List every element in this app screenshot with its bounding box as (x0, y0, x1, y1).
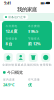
button[interactable]: 能耗报告 (27, 53, 39, 66)
staticText: 使用帮助 (40, 63, 52, 66)
staticText: 今日概览 (7, 70, 23, 75)
staticText: ¥ 86.5 (28, 29, 38, 34)
staticText: ▮▮▮ (41, 1, 44, 4)
staticText: 在线设备 (5, 37, 17, 40)
staticText: 24.5°C (3, 82, 15, 87)
staticText: 家庭成员 (15, 63, 27, 66)
staticText: 优 (28, 82, 32, 87)
staticText: 本月费用 (28, 24, 40, 28)
button[interactable]: 家庭成员 (14, 53, 27, 66)
button[interactable]: 设备运行正常 (3, 14, 28, 20)
staticText: 全屋控制 (2, 63, 14, 66)
staticText: 我的家庭 (17, 6, 37, 13)
staticText: 前 12% (28, 41, 41, 46)
button[interactable]: 全屋控制 (2, 53, 14, 66)
button[interactable]: 使用帮助 (39, 53, 52, 66)
staticText: 室内温度 (3, 78, 15, 81)
staticText: 12.4 度 (5, 29, 17, 34)
staticText: 能耗报告 (27, 63, 39, 66)
staticText: 设备运行正常 (8, 15, 26, 19)
staticText: 9:41 (4, 0, 11, 6)
staticText: 节能排名 (28, 37, 40, 40)
staticText: 8 台 (5, 41, 12, 46)
staticText: ◗ (44, 1, 45, 4)
staticText: 今日用电 (5, 24, 17, 28)
staticText: 空气质量 (28, 78, 40, 81)
